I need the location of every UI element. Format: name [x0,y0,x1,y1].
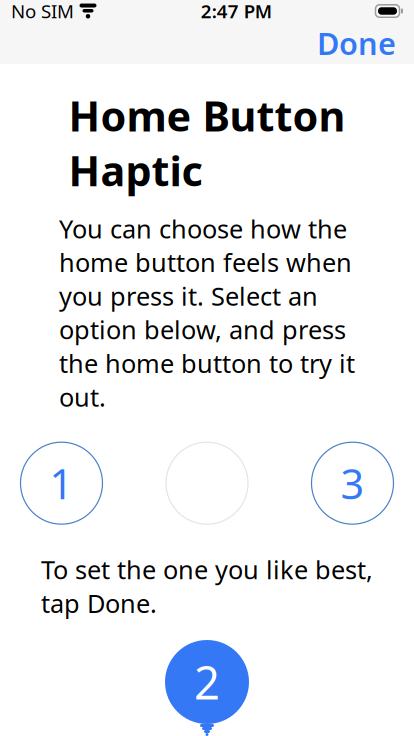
staticText: Home Button Haptic [68,88,345,198]
staticText: Done [317,23,396,63]
staticText: 3 [340,456,364,511]
staticText: To set the one you like best, tap Done. [41,553,373,620]
staticText: You can choose how the home button feels… [59,212,355,414]
button[interactable]: Haptic option 2, selected [165,640,249,736]
staticText: No SIM [11,0,74,23]
button[interactable]: Haptic option 1 [20,442,102,524]
button[interactable]: Haptic option 2 [166,442,248,524]
button[interactable]: Haptic option 3 [311,442,393,524]
staticText: 2 [194,652,220,712]
staticText: 1 [49,456,73,511]
button[interactable]: Done [303,13,410,73]
staticText: 2:47 PM [201,0,272,23]
